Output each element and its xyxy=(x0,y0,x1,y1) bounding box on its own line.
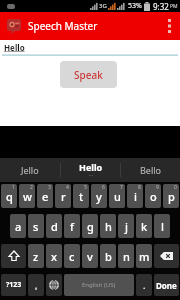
button[interactable]: t xyxy=(73,184,89,208)
staticText: Hello xyxy=(4,42,25,53)
button[interactable]: d xyxy=(46,214,62,238)
staticText: 1 xyxy=(12,184,15,191)
staticText: 9:32 xyxy=(153,1,169,12)
button[interactable]: n xyxy=(118,244,134,268)
staticText: 3 xyxy=(48,184,51,191)
staticText: c xyxy=(69,249,75,264)
staticText: z xyxy=(33,249,39,264)
button[interactable]: j xyxy=(118,214,134,238)
staticText: y xyxy=(96,189,102,204)
button[interactable]: a xyxy=(10,214,26,238)
button[interactable]: o xyxy=(145,184,161,208)
button[interactable]: Done xyxy=(154,274,179,296)
staticText: 0 xyxy=(174,184,177,191)
staticText: l xyxy=(161,219,164,234)
staticText: x xyxy=(51,249,57,264)
button[interactable]: q xyxy=(1,184,17,208)
button[interactable] xyxy=(1,244,26,268)
button[interactable]: v xyxy=(82,244,98,268)
staticText: ... xyxy=(89,171,94,178)
staticText: Hello xyxy=(79,161,103,173)
staticText: p xyxy=(168,189,175,204)
button[interactable]: x xyxy=(46,244,62,268)
button[interactable]: y xyxy=(91,184,107,208)
staticText: 53% xyxy=(128,1,142,11)
staticText: Done xyxy=(156,280,177,291)
staticText: m xyxy=(139,249,150,264)
button[interactable]: Bello xyxy=(121,158,180,182)
button[interactable]: e xyxy=(37,184,53,208)
button[interactable]: s xyxy=(28,214,44,238)
staticText: Speak xyxy=(74,68,103,82)
staticText: w xyxy=(23,189,32,204)
button[interactable]: English (US) xyxy=(64,274,134,296)
button[interactable]: p xyxy=(163,184,179,208)
button[interactable]: l xyxy=(154,214,170,238)
button[interactable]: k xyxy=(136,214,152,238)
button[interactable]: u xyxy=(109,184,125,208)
staticText: n xyxy=(123,249,130,264)
staticText: , xyxy=(35,279,38,291)
staticText: a xyxy=(15,219,22,234)
staticText: 8 xyxy=(138,184,141,191)
staticText: 3G xyxy=(99,2,107,10)
staticText: i xyxy=(134,189,137,204)
staticText: 2 xyxy=(30,184,33,191)
staticText: k xyxy=(141,219,148,234)
staticText: s xyxy=(33,219,39,234)
button[interactable]: . xyxy=(136,274,152,296)
button[interactable]: , xyxy=(28,274,44,296)
staticText: r xyxy=(61,189,66,204)
staticText: o xyxy=(150,189,157,204)
staticText: 7 xyxy=(120,184,123,191)
staticText: Bello xyxy=(140,164,162,176)
staticText: PM xyxy=(170,3,178,10)
button[interactable]: w xyxy=(19,184,35,208)
staticText: v xyxy=(87,249,93,264)
staticText: h xyxy=(105,219,112,234)
staticText: g xyxy=(87,219,94,234)
staticText: English (US) xyxy=(82,281,116,289)
button[interactable]: Hello xyxy=(61,158,120,182)
button[interactable]: i xyxy=(127,184,143,208)
staticText: . xyxy=(143,279,146,291)
button[interactable]: g xyxy=(82,214,98,238)
staticText: 6 xyxy=(102,184,105,191)
button[interactable]: c xyxy=(64,244,80,268)
button[interactable]: b xyxy=(100,244,116,268)
staticText: ?123 xyxy=(6,280,22,290)
button[interactable]: Speak xyxy=(60,61,117,88)
button[interactable]: Jello xyxy=(0,158,60,182)
staticText: 9 xyxy=(156,184,159,191)
button[interactable]: r xyxy=(55,184,71,208)
staticText: d xyxy=(51,219,58,234)
button[interactable]: z xyxy=(28,244,44,268)
button[interactable]: f xyxy=(64,214,80,238)
button[interactable]: ?123 xyxy=(1,274,26,296)
staticText: 5 xyxy=(84,184,87,191)
button[interactable] xyxy=(160,12,180,40)
staticText: Jello xyxy=(21,164,39,176)
button[interactable]: m xyxy=(136,244,152,268)
staticText: 4 xyxy=(66,184,69,191)
button[interactable] xyxy=(46,274,62,296)
staticText: f xyxy=(70,219,74,234)
button[interactable] xyxy=(154,244,179,268)
staticText: Speech Master xyxy=(28,19,98,33)
staticText: q xyxy=(6,189,13,204)
staticText: u xyxy=(114,189,121,204)
button[interactable]: h xyxy=(100,214,116,238)
staticText: e xyxy=(42,189,49,204)
staticText: t xyxy=(79,189,84,204)
staticText: b xyxy=(105,249,112,264)
staticText: j xyxy=(125,219,128,234)
